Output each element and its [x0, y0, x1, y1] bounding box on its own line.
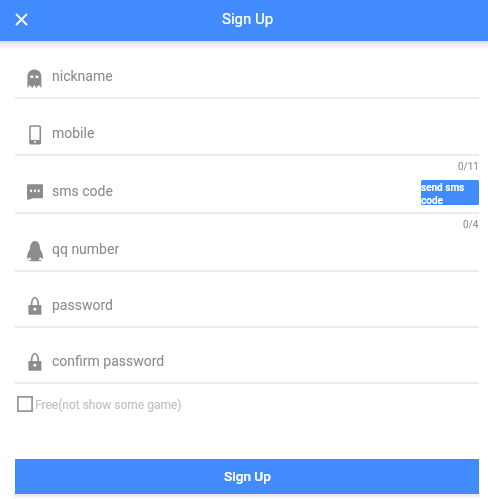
staticText: Free(not show some game) — [35, 398, 182, 412]
staticText: send sms code — [421, 182, 479, 205]
staticText: password — [52, 297, 113, 313]
button[interactable]: Free(not show some game) — [15, 393, 190, 414]
staticText: 0/4 — [463, 219, 479, 231]
staticText: Sign Up — [222, 10, 274, 28]
staticText: nickname — [52, 68, 113, 84]
button[interactable]: mobile — [15, 119, 479, 156]
staticText: Sign Up — [224, 468, 271, 484]
button[interactable]: sms code — [15, 177, 479, 214]
staticText: qq number — [52, 241, 120, 257]
button[interactable]: qq number — [15, 235, 479, 272]
button[interactable]: Sign Up — [15, 459, 479, 494]
staticText: mobile — [52, 125, 95, 141]
staticText: confirm password — [52, 353, 165, 369]
button[interactable]: password — [15, 291, 479, 328]
button[interactable]: nickname — [15, 62, 479, 99]
button[interactable]: send sms code — [421, 180, 479, 205]
staticText: 0/11 — [458, 161, 479, 173]
button[interactable]: Close — [4, 1, 38, 38]
staticText: sms code — [52, 183, 113, 199]
button[interactable]: confirm password — [15, 347, 479, 384]
